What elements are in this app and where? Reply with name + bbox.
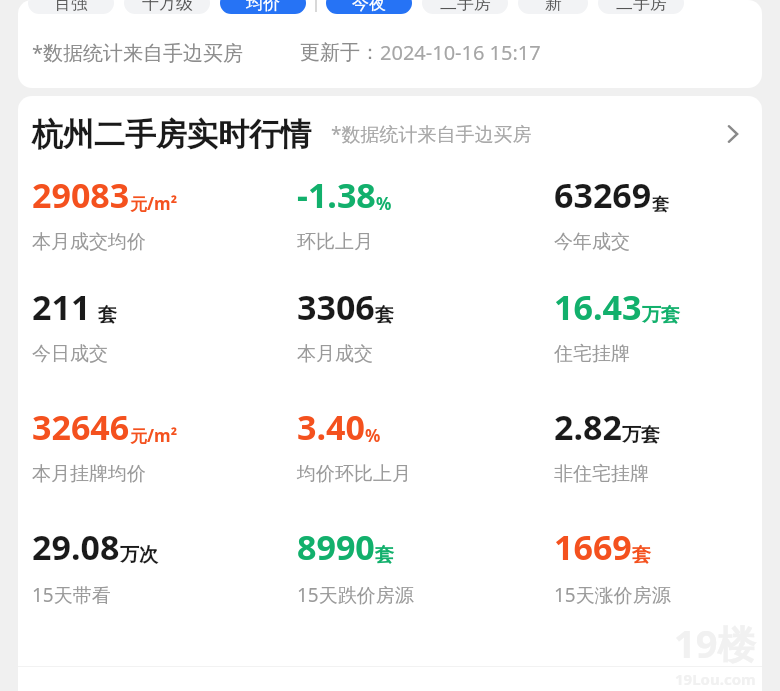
staticText: % (376, 192, 392, 215)
staticText: -1.38 (297, 172, 376, 218)
staticText: 今夜 (352, 0, 386, 14)
button[interactable]: 3306 (297, 284, 554, 366)
staticText: 19Lou.com (675, 669, 756, 689)
button[interactable]: 3.40 (297, 404, 554, 486)
button[interactable]: 新 (518, 0, 588, 14)
staticText: 3306 (297, 284, 375, 330)
button[interactable]: -1.38 (297, 172, 554, 254)
staticText: 19楼 (674, 617, 756, 669)
staticText: 本月成交均价 (32, 230, 146, 254)
staticText: 均价 (246, 0, 280, 14)
button[interactable]: 29.08 (32, 524, 297, 608)
staticText: 29.08 (32, 524, 120, 570)
staticText: 本月挂牌均价 (32, 462, 146, 486)
button[interactable]: 1669 (554, 524, 762, 608)
staticText: 16.43 (554, 284, 642, 330)
staticText: 元/m² (130, 424, 178, 447)
staticText: 63269 (554, 172, 652, 218)
staticText: 今日成交 (32, 342, 108, 366)
staticText: 均价环比上月 (297, 462, 411, 486)
staticText: 15天带看 (32, 582, 111, 608)
staticText: 环比上月 (297, 230, 373, 254)
button[interactable]: 今夜 (326, 0, 412, 14)
staticText: 套 (652, 194, 669, 215)
staticText: *数据统计来自手边买房 (32, 39, 244, 66)
button[interactable]: 百强 (28, 0, 114, 14)
staticText: 二手房 (616, 0, 667, 14)
button[interactable]: 32646 (32, 404, 297, 486)
staticText: 3.40 (297, 404, 365, 450)
button[interactable]: 二手房 (422, 0, 508, 14)
staticText: 本月成交 (297, 342, 373, 366)
staticText: 211 (32, 284, 91, 330)
staticText: 今年成交 (554, 230, 630, 254)
staticText: 套 (632, 543, 651, 567)
button[interactable]: 2.82 (554, 404, 762, 486)
staticText: % (365, 424, 381, 447)
staticText: 8990 (297, 524, 375, 570)
other: 查看详情 (718, 119, 748, 149)
staticText: 元/m² (130, 192, 178, 215)
staticText: 15天涨价房源 (554, 582, 671, 608)
staticText: 1669 (554, 524, 632, 570)
button[interactable]: 63269 (554, 172, 762, 254)
staticText: 万套 (622, 423, 660, 447)
button[interactable]: 杭州二手房实时行情 (18, 96, 762, 172)
staticText: 更新于： (300, 40, 380, 65)
staticText: 套 (98, 303, 117, 327)
staticText: 2024-10-16 15:17 (380, 39, 541, 66)
staticText: 非住宅挂牌 (554, 462, 649, 486)
staticText: 住宅挂牌 (554, 342, 630, 366)
staticText: 二手房 (440, 0, 491, 14)
staticText: 新 (545, 0, 562, 14)
staticText: 万次 (120, 543, 158, 567)
button[interactable]: 均价 (220, 0, 306, 14)
staticText: 百强 (54, 0, 88, 14)
staticText: 万套 (642, 303, 680, 327)
staticText: 套 (375, 543, 394, 567)
staticText: *数据统计来自手边买房 (331, 121, 532, 147)
button[interactable]: 二手房 (598, 0, 684, 14)
staticText: 2.82 (554, 404, 622, 450)
button[interactable]: 29083 (32, 172, 297, 254)
staticText: 32646 (32, 404, 130, 450)
staticText: 15天跌价房源 (297, 582, 414, 608)
staticText: 套 (375, 303, 394, 327)
button[interactable]: 8990 (297, 524, 554, 608)
button[interactable]: 211 (32, 284, 297, 366)
staticText: 29083 (32, 172, 130, 218)
staticText: 十万级 (142, 0, 193, 14)
staticText: 杭州二手房实时行情 (32, 115, 311, 154)
button[interactable]: 16.43 (554, 284, 762, 366)
button[interactable]: 十万级 (124, 0, 210, 14)
